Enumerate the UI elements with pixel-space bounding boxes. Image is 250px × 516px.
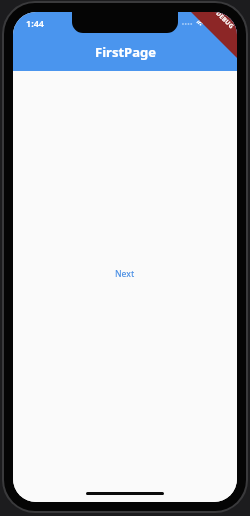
staticText: FirstPage [95,43,156,61]
staticText: 1:44 [26,17,44,29]
staticText: Next [115,268,135,280]
staticText: DEBUG [214,12,236,31]
other: Wi-Fi [196,19,205,26]
button[interactable]: Next [106,263,144,285]
